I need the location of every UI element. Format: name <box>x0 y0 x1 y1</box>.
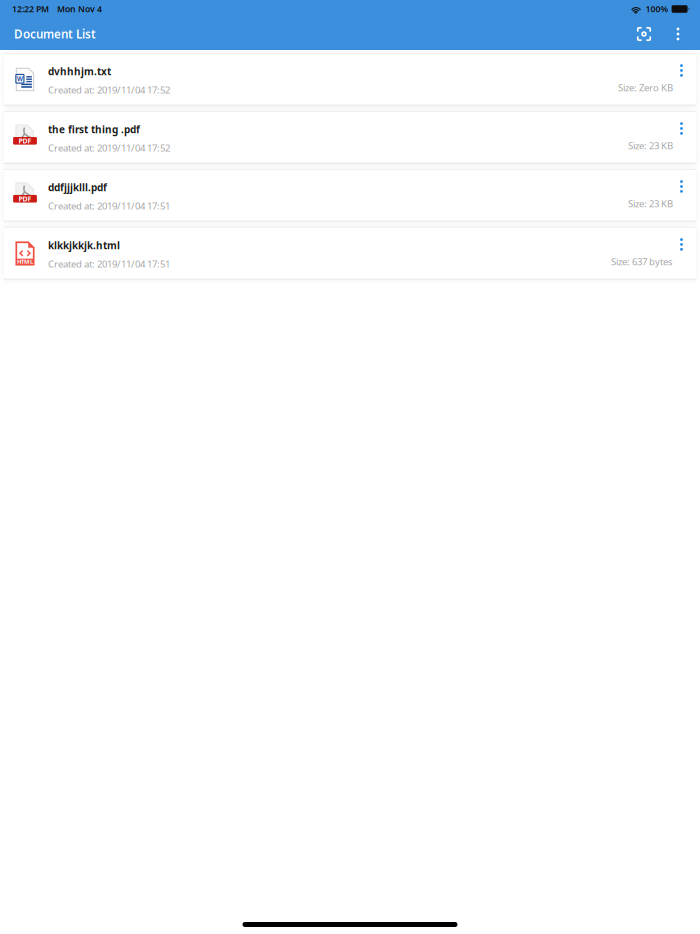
staticText: W <box>17 75 23 83</box>
staticText: ddfjjjklll.pdf <box>48 181 107 194</box>
staticText: Created at: 2019/11/04 17:52 <box>48 83 170 96</box>
button[interactable]: More options <box>668 21 688 47</box>
staticText: PDF <box>18 194 31 203</box>
staticText: Size: Zero KB <box>618 81 673 94</box>
staticText: Size: 637 bytes <box>611 255 673 268</box>
button[interactable]: HTML <box>4 227 696 280</box>
staticText: PDF <box>18 136 31 145</box>
staticText: Created at: 2019/11/04 17:51 <box>48 257 170 270</box>
button[interactable]: PDF <box>4 169 696 222</box>
staticText: Mon Nov 4 <box>57 3 102 15</box>
staticText: the first thing .pdf <box>48 123 140 136</box>
button[interactable]: Scan document <box>631 21 657 47</box>
button[interactable]: Row options <box>673 62 690 79</box>
button[interactable]: Row options <box>673 178 690 195</box>
button[interactable]: Row options <box>673 120 690 137</box>
staticText: Created at: 2019/11/04 17:52 <box>48 141 170 154</box>
button[interactable]: PDF <box>4 111 696 164</box>
staticText: 12:22 PM <box>12 3 49 15</box>
staticText: Size: 23 KB <box>628 197 673 210</box>
staticText: Size: 23 KB <box>628 139 673 152</box>
button[interactable]: Row options <box>673 236 690 253</box>
staticText: HTML <box>17 257 33 265</box>
staticText: klkkjkkjk.html <box>48 239 120 252</box>
staticText: Created at: 2019/11/04 17:51 <box>48 199 170 212</box>
staticText: Document List <box>14 26 96 42</box>
button[interactable]: W <box>4 53 696 106</box>
staticText: dvhhhjm.txt <box>48 65 111 78</box>
staticText: 100% <box>646 3 669 15</box>
